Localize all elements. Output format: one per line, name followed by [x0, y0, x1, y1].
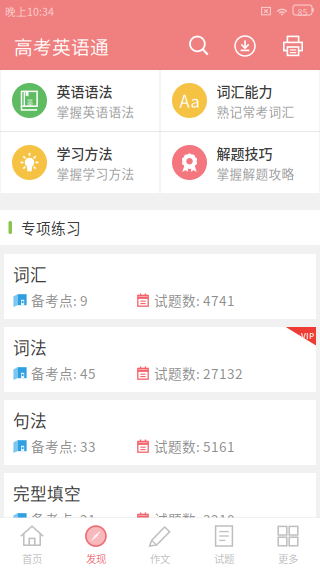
button[interactable]: 完型填空 [4, 473, 316, 538]
staticText: 掌握解题攻略 [216, 164, 294, 182]
staticText: Aa [179, 88, 199, 112]
staticText: 句法 [13, 408, 47, 432]
staticText: 备考点: 33 [31, 436, 96, 456]
staticText: 试题数: 5161 [154, 436, 235, 456]
button[interactable]: 英 [0, 70, 159, 131]
staticText: VIP [301, 330, 314, 341]
button[interactable]: 打印 [269, 22, 317, 70]
staticText: 作文 [150, 551, 170, 566]
button[interactable]: 学习方法 [0, 132, 159, 193]
button[interactable]: 词汇 [4, 254, 316, 319]
staticText: 掌握英语语法 [56, 102, 134, 120]
staticText: 发现 [86, 551, 106, 566]
staticText: 解题技巧 [216, 143, 272, 163]
button[interactable]: 试题 [192, 518, 256, 568]
staticText: 85 [298, 6, 308, 18]
button[interactable]: 句法 [4, 400, 316, 465]
staticText: 专项练习 [21, 217, 81, 238]
button[interactable]: 下载 [221, 22, 269, 70]
staticText: 英 [27, 98, 33, 107]
staticText: 完型填空 [13, 481, 81, 505]
button[interactable]: Aa [160, 70, 319, 131]
staticText: 备考点: 9 [31, 290, 88, 310]
staticText: 掌握学习方法 [56, 164, 134, 182]
staticText: 高考英语通 [14, 32, 109, 59]
button[interactable]: 词法 [4, 327, 316, 392]
staticText: 晚上10:34 [5, 3, 54, 19]
staticText: 首页 [22, 551, 42, 566]
staticText: 试题 [214, 551, 234, 566]
button[interactable]: 作文 [128, 518, 192, 568]
staticText: 熟记常考词汇 [216, 102, 294, 120]
staticText: 试题数: 4741 [154, 290, 235, 310]
button[interactable]: 搜索 [177, 22, 221, 70]
staticText: 英语语法 [56, 81, 112, 101]
staticText: 学习方法 [56, 143, 112, 163]
staticText: 备考点: 45 [31, 363, 96, 383]
button[interactable]: 发现 [64, 518, 128, 568]
staticText: 试题数: 27132 [154, 363, 243, 383]
staticText: 词法 [13, 335, 47, 359]
button[interactable]: 更多 [256, 518, 320, 568]
button[interactable]: 首页 [0, 518, 64, 568]
staticText: 备考点: 21 [31, 509, 96, 529]
button[interactable]: 解题技巧 [160, 132, 319, 193]
staticText: 词汇 [13, 262, 47, 286]
staticText: 词汇能力 [216, 81, 272, 101]
staticText: 试题数: 3210 [154, 509, 235, 529]
staticText: 更多 [278, 551, 298, 566]
